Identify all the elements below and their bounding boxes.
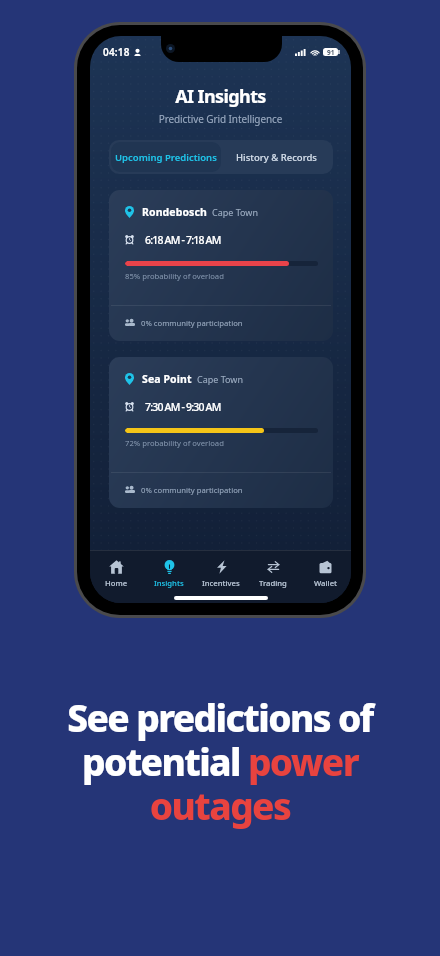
staticText: Insights: [154, 578, 184, 588]
button[interactable]: Rondebosch: [109, 190, 333, 341]
staticText: Incentives: [202, 578, 240, 588]
button[interactable]: Sea Point: [109, 357, 333, 508]
button[interactable]: Insights: [143, 560, 195, 592]
staticText: 0% community participation: [141, 485, 243, 495]
staticText: 04:18: [103, 45, 130, 59]
staticText: Rondebosch: [142, 205, 207, 219]
staticText: History & Records: [236, 151, 317, 164]
button[interactable]: History & Records: [221, 142, 331, 172]
staticText: Trading: [259, 578, 287, 588]
staticText: 85% probability of overload: [125, 271, 224, 281]
staticText: 72% probability of overload: [125, 438, 224, 448]
button[interactable]: Wallet: [299, 560, 351, 592]
staticText: Cape Town: [212, 206, 258, 218]
button[interactable]: Home: [90, 560, 143, 592]
staticText: 7:30 AM - 9:30 AM: [145, 400, 221, 414]
staticText: Predictive Grid Intelligence: [90, 112, 351, 126]
staticText: Home: [105, 578, 128, 588]
button[interactable]: Trading: [247, 560, 299, 592]
staticText: AI Insights: [90, 84, 351, 109]
button[interactable]: Upcoming Predictions: [111, 142, 221, 172]
staticText: 91: [327, 48, 335, 56]
staticText: Cape Town: [197, 373, 243, 385]
button[interactable]: Incentives: [195, 560, 247, 592]
staticText: Upcoming Predictions: [115, 151, 217, 164]
staticText: Sea Point: [142, 372, 192, 386]
staticText: 0% community participation: [141, 318, 243, 328]
staticText: 6:18 AM - 7:18 AM: [145, 233, 221, 247]
staticText: Wallet: [314, 578, 337, 588]
staticText: See predictions of potential power outag…: [36, 692, 404, 830]
